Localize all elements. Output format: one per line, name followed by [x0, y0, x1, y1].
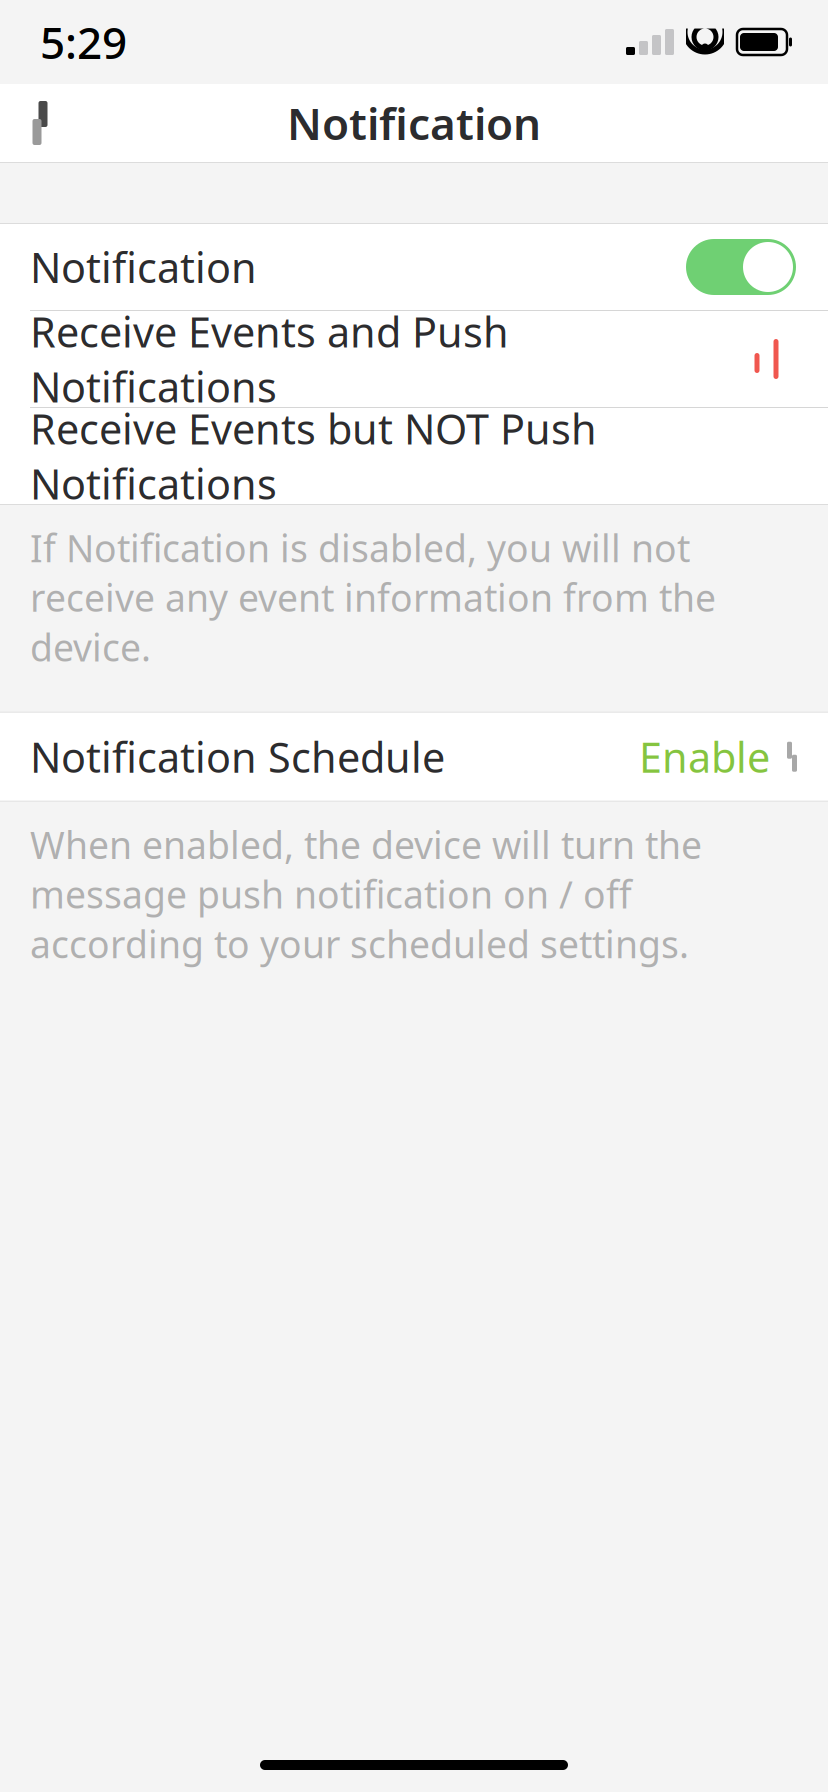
- button[interactable]: Receive Events but NOT Push Notification…: [0, 408, 828, 504]
- button[interactable]: Notification Schedule: [0, 713, 828, 801]
- button[interactable]: Back: [0, 89, 80, 157]
- staticText: Notification Schedule: [30, 729, 445, 784]
- staticText: Receive Events and Push Notifications: [30, 304, 509, 414]
- staticText: Receive Events but NOT Push Notification…: [30, 401, 597, 511]
- button[interactable]: Notification: [0, 224, 828, 310]
- staticText: Enable: [639, 729, 770, 784]
- staticText: Notification: [287, 94, 541, 152]
- button[interactable]: Receive Events and Push Notifications: [0, 311, 828, 407]
- staticText: If Notification is disabled, you will no…: [30, 523, 716, 672]
- staticText: Notification: [30, 240, 257, 294]
- staticText: When enabled, the device will turn the m…: [30, 820, 702, 968]
- staticText: 5:29: [40, 13, 127, 71]
